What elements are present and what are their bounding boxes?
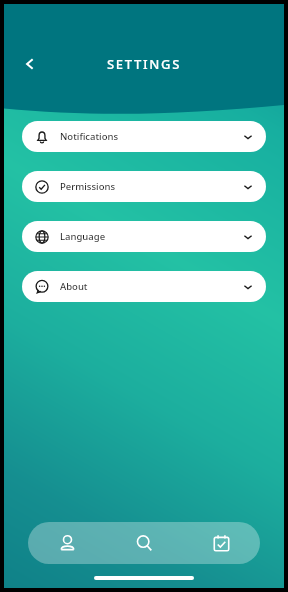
button[interactable]: Permissions	[22, 171, 266, 202]
button[interactable]: Notifications	[22, 121, 266, 152]
button[interactable]: About	[22, 271, 266, 302]
button[interactable]: Calendar	[183, 522, 260, 564]
staticText: About	[60, 280, 88, 293]
button[interactable]: Search	[106, 522, 183, 564]
button[interactable]: Back	[12, 46, 48, 82]
staticText: Permissions	[60, 180, 116, 193]
staticText: Language	[60, 230, 106, 243]
staticText: SETTINGS	[4, 55, 284, 73]
staticText: Notifications	[60, 130, 119, 143]
button[interactable]: Profile	[28, 522, 106, 564]
button[interactable]: Language	[22, 221, 266, 252]
